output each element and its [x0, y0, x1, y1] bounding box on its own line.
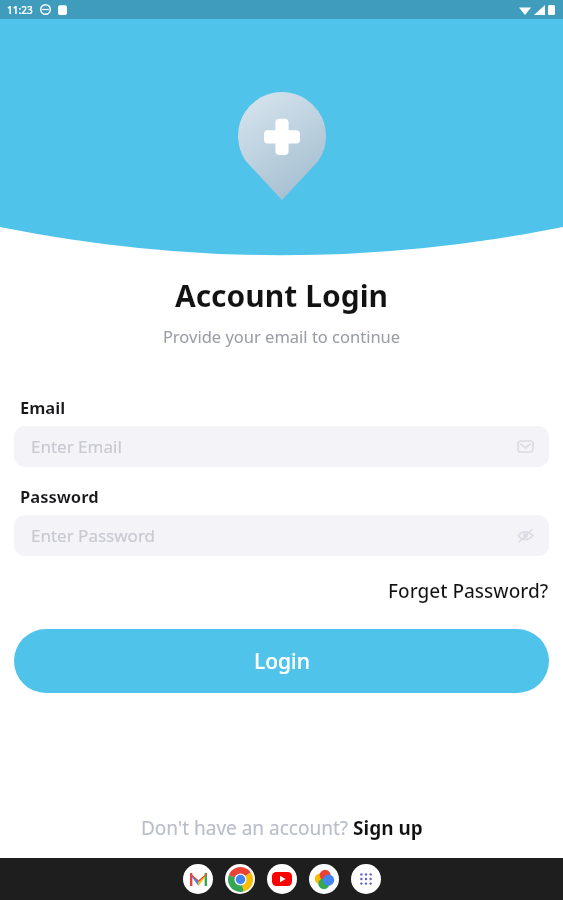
staticText: 11:23	[7, 3, 33, 17]
other: Email	[516, 437, 535, 456]
staticText: Login	[254, 647, 310, 676]
staticText: Enter Password	[31, 524, 156, 547]
staticText: Sign up	[353, 815, 423, 841]
staticText: Account Login	[0, 275, 563, 316]
other: Toggle password visibility	[516, 526, 535, 545]
button[interactable]: Enter Email	[14, 426, 549, 467]
staticText: Enter Email	[31, 435, 122, 458]
button[interactable]: All apps	[351, 864, 381, 894]
staticText: Password	[20, 485, 99, 507]
button[interactable]: Don't have an account?	[133, 811, 431, 845]
button[interactable]: Chrome	[225, 864, 255, 894]
button[interactable]: Login	[14, 629, 549, 693]
button[interactable]: Enter Password	[14, 515, 549, 556]
staticText: Provide your email to continue	[0, 325, 563, 347]
staticText: Forget Password?	[388, 578, 549, 604]
button[interactable]: YouTube	[267, 864, 297, 894]
button[interactable]: Forget Password?	[374, 574, 563, 608]
staticText: Don't have an account?	[141, 815, 353, 841]
staticText: Email	[20, 396, 66, 418]
button[interactable]: Gmail	[183, 864, 213, 894]
button[interactable]: Photos	[309, 864, 339, 894]
